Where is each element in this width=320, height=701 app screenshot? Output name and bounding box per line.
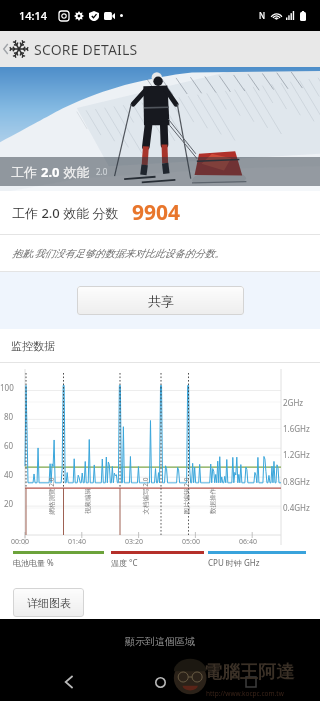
staticText: 100: [0, 382, 14, 393]
staticText: 40: [4, 469, 14, 480]
staticText: 電腦王阿達: [204, 661, 294, 684]
staticText: 14:14: [19, 8, 48, 23]
staticText: CPU 时钟 GHz: [208, 557, 260, 568]
staticText: 0.8GHz: [283, 476, 310, 487]
staticText: 监控数据: [11, 339, 55, 353]
staticText: N: [259, 10, 266, 21]
staticText: http://www.kocpc.com.tw: [206, 689, 284, 698]
staticText: 60: [4, 440, 14, 451]
staticText: 工作 2.0 效能 分数: [12, 204, 119, 222]
staticText: 数据操作: [209, 488, 217, 514]
staticText: 06:40: [239, 537, 257, 547]
staticText: 00:00: [11, 537, 29, 547]
staticText: 效能: [60, 163, 90, 181]
staticText: 详细图表: [27, 596, 71, 610]
staticText: 1.6GHz: [283, 423, 310, 434]
button[interactable]: Back: [49, 663, 89, 701]
button[interactable]: Home: [140, 663, 180, 701]
staticText: 抱歉,我们没有足够的数据来对比此设备的分数。: [12, 246, 225, 260]
staticText: 1.2GHz: [283, 449, 310, 460]
button[interactable]: Recent apps: [231, 663, 271, 701]
staticText: 9904: [132, 198, 181, 227]
staticText: 文档编写 2.0: [140, 477, 149, 514]
button[interactable]: 详细图表: [13, 588, 84, 617]
staticText: 顯示到這個區域: [125, 635, 195, 648]
staticText: 2.0: [96, 166, 108, 177]
staticText: 01:40: [68, 537, 86, 547]
staticText: 05:00: [182, 537, 200, 547]
staticText: 20: [4, 498, 14, 509]
button[interactable]: 共享: [77, 286, 244, 315]
staticText: 图片编辑 2.0: [181, 477, 190, 514]
staticText: 温度 °C: [111, 557, 138, 568]
staticText: 电池电量 %: [13, 557, 54, 568]
staticText: 2GHz: [283, 397, 304, 408]
staticText: 80: [4, 411, 14, 422]
button[interactable]: Back: [0, 31, 10, 67]
staticText: 視频编辑: [84, 488, 92, 514]
staticText: 2.0: [41, 163, 60, 181]
staticText: 網格測覽 2.0: [46, 477, 55, 514]
staticText: 0.4GHz: [283, 502, 310, 513]
staticText: SCORE DETAILS: [34, 40, 138, 59]
staticText: 工作: [11, 163, 41, 181]
staticText: 共享: [148, 293, 174, 309]
staticText: 03:20: [125, 537, 143, 547]
